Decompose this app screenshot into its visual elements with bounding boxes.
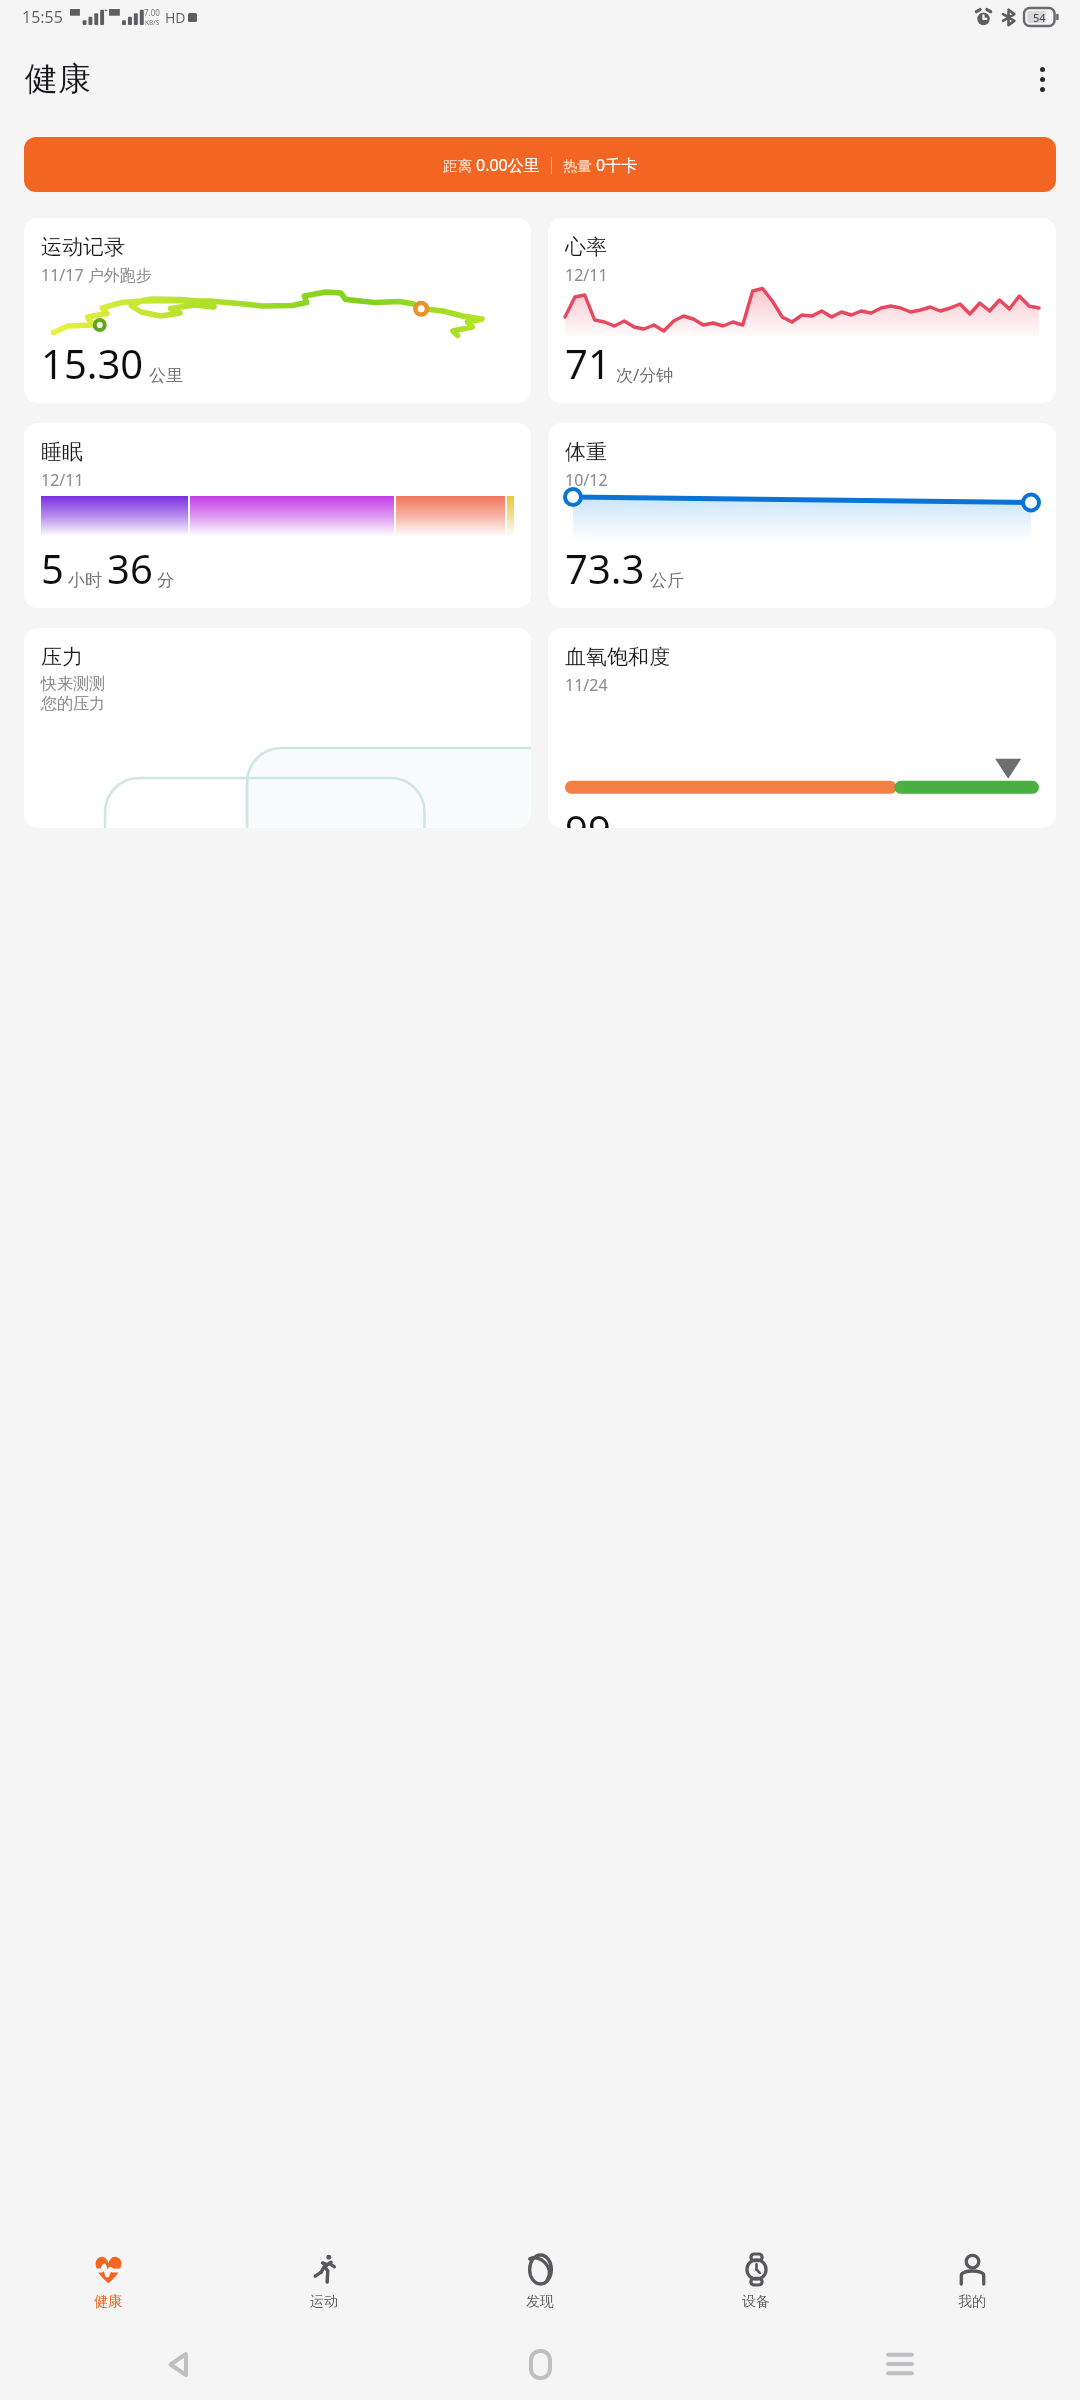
staticText: KB/S [145, 18, 160, 27]
button[interactable]: 心率 [548, 218, 1056, 403]
button[interactable]: 运动记录 [24, 218, 531, 403]
staticText: 距离 [443, 155, 476, 175]
staticText: 小时 [68, 570, 102, 591]
button[interactable]: 体重 [548, 423, 1056, 608]
button[interactable]: 压力 [24, 628, 531, 828]
staticText: 公里 [149, 365, 183, 386]
button[interactable]: Back [0, 2328, 360, 2400]
staticText: 发现 [526, 2293, 554, 2311]
staticText: 0千卡 [596, 154, 638, 176]
staticText: 公斤 [650, 570, 684, 591]
staticText: 71 [565, 336, 611, 390]
button[interactable]: 距离 [24, 137, 1056, 192]
button[interactable]: 血氧饱和度 [548, 628, 1056, 828]
staticText: 快来测测 [41, 674, 105, 694]
staticText: 5 [41, 541, 64, 595]
staticText: 睡眠 [41, 439, 83, 465]
staticText: 压力 [41, 644, 83, 670]
staticText: 15.30 [41, 336, 144, 390]
staticText: 血氧饱和度 [565, 644, 670, 670]
staticText: 99 [565, 802, 611, 828]
staticText: 热量 [563, 155, 596, 175]
button[interactable]: 我的 [864, 2236, 1080, 2328]
staticText: 设备 [742, 2293, 770, 2311]
staticText: 运动 [310, 2293, 338, 2311]
staticText: 7.00 [144, 7, 160, 18]
button[interactable]: 设备 [648, 2236, 864, 2328]
staticText: 15:55 [22, 6, 63, 28]
staticText: 10/12 [565, 469, 608, 491]
staticText: 36 [107, 541, 153, 595]
button[interactable]: Recents [720, 2328, 1080, 2400]
button[interactable]: 健康 [0, 2236, 216, 2328]
staticText: 12/11 [565, 264, 608, 286]
staticText: 体重 [565, 439, 607, 465]
staticText: 0.00公里 [476, 154, 540, 176]
button[interactable]: 发现 [432, 2236, 648, 2328]
staticText: 次/分钟 [616, 363, 674, 386]
staticText: 我的 [958, 2293, 986, 2311]
staticText: 12/11 [41, 469, 84, 491]
staticText: 11/24 [565, 674, 608, 696]
button[interactable]: Home [360, 2328, 720, 2400]
button[interactable]: 睡眠 [24, 423, 531, 608]
staticText: 73.3 [565, 541, 645, 595]
staticText: 54 [1033, 10, 1046, 25]
staticText: 健康 [25, 58, 91, 100]
button[interactable]: 运动 [216, 2236, 432, 2328]
staticText: 您的压力 [41, 694, 105, 714]
staticText: HD [165, 8, 186, 27]
button[interactable]: More options [1018, 55, 1066, 103]
staticText: 心率 [565, 234, 607, 260]
staticText: 分 [157, 570, 174, 591]
staticText: 11/17 户外跑步 [41, 264, 152, 286]
staticText: 运动记录 [41, 234, 125, 260]
staticText: 健康 [94, 2293, 122, 2311]
